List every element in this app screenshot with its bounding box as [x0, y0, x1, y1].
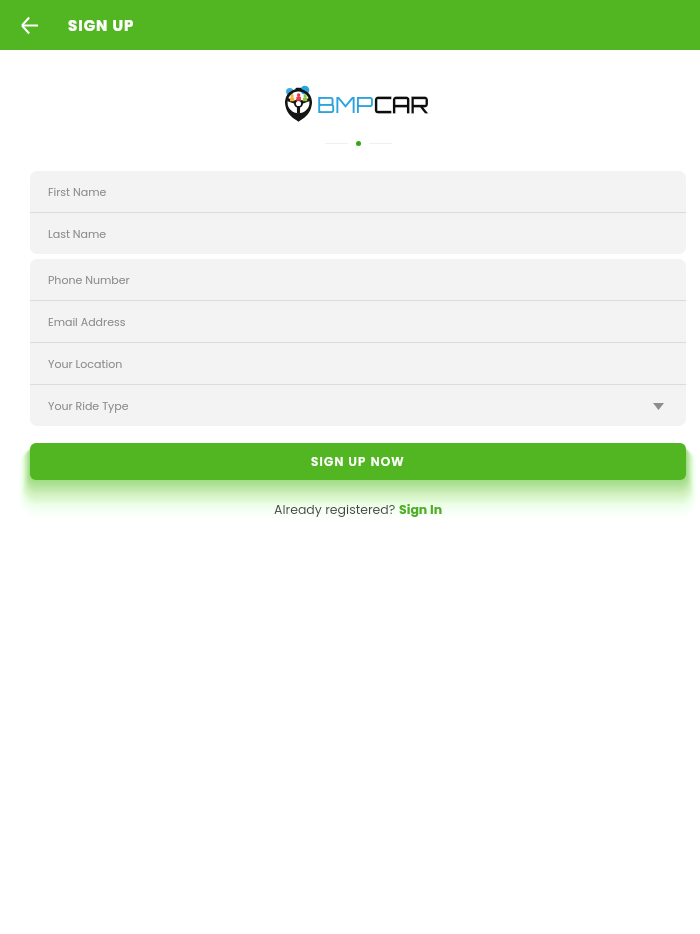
button[interactable]: Your Ride Type — [30, 385, 686, 426]
staticText: Your Location — [48, 356, 123, 371]
staticText: Already registered? — [274, 501, 399, 518]
staticText: Email Address — [48, 314, 126, 329]
staticText: Phone Number — [48, 272, 130, 287]
other: Open ride type list — [650, 398, 666, 414]
staticText: First Name — [48, 184, 107, 199]
staticText: Sign In — [399, 501, 443, 518]
button[interactable]: Phone Number — [30, 259, 686, 300]
button[interactable]: Back — [13, 9, 45, 41]
button[interactable]: Email Address — [30, 301, 686, 342]
staticText: SIGN UP — [68, 15, 135, 36]
button[interactable]: Your Location — [30, 343, 686, 384]
button[interactable]: First Name — [30, 171, 686, 212]
button[interactable]: SIGN UP NOW — [30, 443, 686, 480]
staticText: Last Name — [48, 226, 107, 241]
staticText: CAR — [374, 91, 429, 119]
staticText: Your Ride Type — [48, 398, 129, 413]
button[interactable]: Last Name — [30, 213, 686, 254]
staticText: BMP — [317, 91, 374, 119]
button[interactable]: Sign In — [399, 501, 443, 518]
staticText: SIGN UP NOW — [311, 453, 405, 470]
